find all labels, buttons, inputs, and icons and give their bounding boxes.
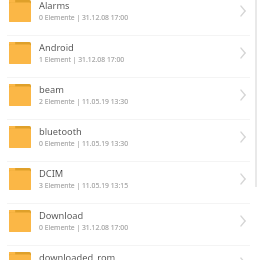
- button[interactable]: Open Download: [236, 212, 250, 230]
- button[interactable]: Open bluetooth: [236, 128, 250, 146]
- button[interactable]: bluetooth: [0, 120, 260, 162]
- staticText: 1 Element | 31.12.08 17:00: [39, 55, 125, 64]
- staticText: downloaded_rom: [39, 251, 116, 260]
- button[interactable]: DCIM: [0, 162, 260, 204]
- staticText: bluetooth: [39, 125, 82, 138]
- button[interactable]: Alarms: [0, 0, 260, 36]
- staticText: beam: [39, 83, 64, 96]
- button[interactable]: Open Android: [236, 44, 250, 62]
- staticText: Android: [39, 41, 74, 54]
- button[interactable]: Open DCIM: [236, 170, 250, 188]
- staticText: Alarms: [39, 0, 70, 12]
- staticText: DCIM: [39, 167, 64, 180]
- button[interactable]: Android: [0, 36, 260, 78]
- button[interactable]: Open Alarms: [236, 2, 250, 20]
- button[interactable]: beam: [0, 78, 260, 120]
- button[interactable]: downloaded_rom: [0, 246, 260, 260]
- staticText: 0 Elemente | 31.12.08 17:00: [39, 223, 129, 232]
- button[interactable]: Download: [0, 204, 260, 246]
- staticText: Download: [39, 209, 84, 222]
- button[interactable]: Open beam: [236, 86, 250, 104]
- staticText: 0 Elemente | 11.05.19 13:30: [39, 139, 129, 148]
- button[interactable]: Open downloaded_rom: [236, 254, 250, 260]
- staticText: 2 Elemente | 11.05.19 13:30: [39, 97, 129, 106]
- staticText: 0 Elemente | 31.12.08 17:00: [39, 13, 129, 22]
- staticText: 3 Elemente | 11.05.19 13:15: [39, 181, 129, 190]
